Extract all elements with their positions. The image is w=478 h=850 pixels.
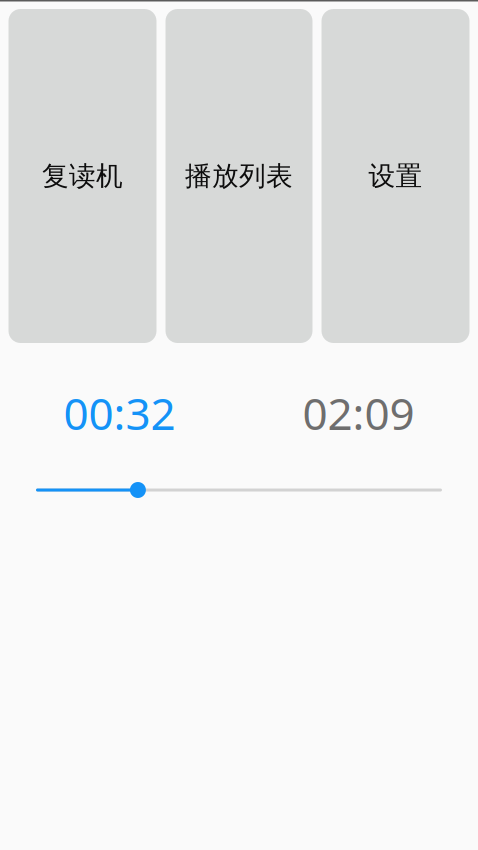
staticText: 复读机 — [42, 160, 123, 192]
staticText: 02:09 — [302, 384, 414, 442]
button[interactable]: 设置 — [321, 9, 469, 343]
button[interactable]: Seek position — [36, 475, 442, 505]
staticText: 00:32 — [63, 384, 175, 442]
staticText: 设置 — [368, 160, 422, 192]
button[interactable]: 播放列表 — [165, 9, 312, 343]
staticText: 播放列表 — [185, 160, 293, 192]
button[interactable]: 复读机 — [8, 9, 156, 343]
